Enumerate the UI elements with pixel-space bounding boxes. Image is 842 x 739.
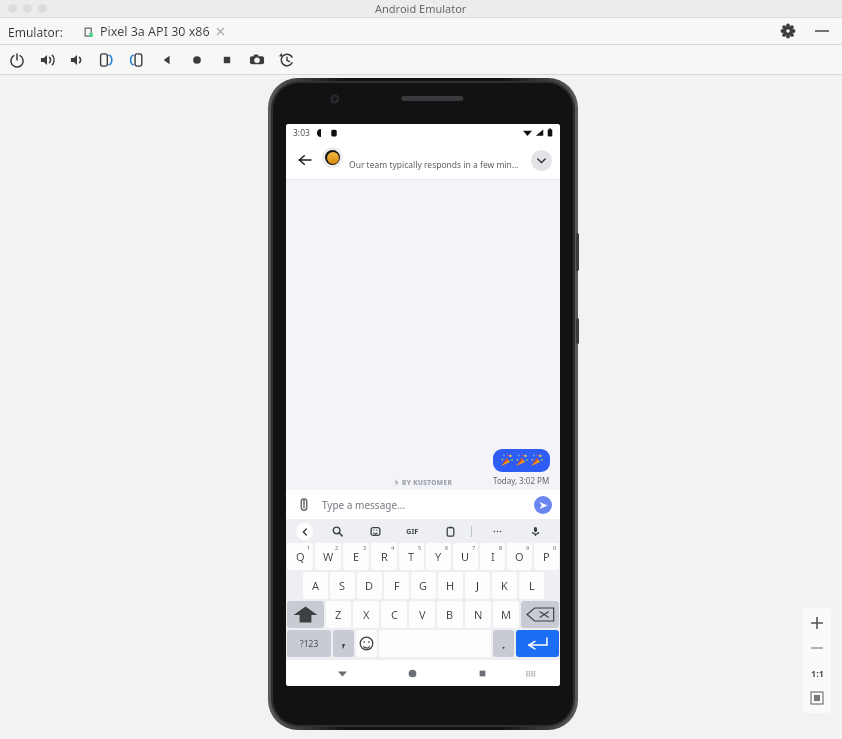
button[interactable]: Q — [287, 543, 313, 570]
staticText: P — [543, 549, 550, 564]
button[interactable]: Search — [328, 522, 346, 540]
button[interactable]: 1:1 — [807, 663, 827, 683]
staticText: F — [394, 578, 400, 593]
button[interactable]: Home — [402, 663, 422, 683]
staticText: Q — [296, 549, 305, 564]
staticText: K — [501, 578, 508, 593]
button[interactable]: Stickers — [366, 522, 384, 540]
staticText: Emulator: — [8, 24, 63, 40]
button[interactable]: D — [357, 572, 382, 599]
button[interactable]: Backspace — [521, 601, 559, 628]
staticText: R — [381, 549, 388, 564]
button[interactable]: M — [493, 601, 519, 628]
button[interactable]: Back — [156, 49, 178, 71]
button[interactable]: Home — [186, 49, 208, 71]
button[interactable]: More options — [488, 522, 506, 540]
staticText: W — [323, 549, 334, 564]
staticText: 4 — [391, 544, 395, 551]
staticText: X — [363, 607, 370, 622]
staticText: GIF — [406, 526, 419, 536]
button[interactable]: Y — [426, 543, 451, 570]
button[interactable]: Fit to window — [807, 688, 827, 708]
button[interactable]: Screenshot — [246, 49, 268, 71]
staticText: 1 — [307, 544, 311, 551]
staticText: H — [446, 578, 455, 593]
button[interactable]: G — [411, 572, 436, 599]
staticText: Type a message... — [322, 498, 406, 512]
staticText: D — [365, 578, 374, 593]
button[interactable]: Period — [493, 630, 514, 657]
staticText: A — [312, 578, 320, 593]
staticText: ?123 — [300, 638, 319, 650]
button[interactable]: X — [353, 601, 379, 628]
button[interactable]: Expand — [531, 150, 552, 171]
staticText: 8 — [499, 544, 503, 551]
button[interactable]: O — [507, 543, 532, 570]
button[interactable]: B — [437, 601, 463, 628]
button[interactable]: J — [465, 572, 490, 599]
button[interactable]: Rotate right — [126, 49, 148, 71]
button[interactable]: R — [371, 543, 397, 570]
button[interactable]: Back — [296, 523, 313, 540]
button[interactable]: C — [381, 601, 407, 628]
button[interactable]: Power — [6, 49, 28, 71]
button[interactable]: K — [492, 572, 517, 599]
button[interactable]: Attach file — [294, 495, 314, 515]
staticText: Today, 3:02 PM — [493, 475, 550, 486]
button[interactable]: Overview — [216, 49, 238, 71]
button[interactable]: F — [384, 572, 409, 599]
button[interactable] — [493, 449, 550, 472]
button[interactable]: S — [330, 572, 355, 599]
button[interactable]: Zoom out — [807, 638, 827, 658]
staticText: 3 — [363, 544, 367, 551]
button[interactable]: Comma — [333, 630, 354, 657]
button[interactable]: Switch keyboard — [520, 663, 540, 683]
button[interactable]: E — [343, 543, 369, 570]
button[interactable]: Emoji — [356, 630, 377, 657]
button[interactable]: Shift — [287, 601, 324, 628]
staticText: 6 — [445, 544, 449, 551]
button[interactable]: Pixel 3a API 30 x86 — [79, 23, 229, 40]
button[interactable]: L — [519, 572, 544, 599]
staticText: S — [339, 578, 346, 593]
button[interactable]: I — [480, 543, 505, 570]
staticText: Our team typically responds in a few min… — [349, 159, 519, 171]
button[interactable] — [322, 147, 343, 168]
staticText: 7 — [472, 544, 476, 551]
button[interactable]: Recent apps — [472, 663, 492, 683]
button[interactable]: Voice input — [526, 522, 544, 540]
button[interactable]: H — [438, 572, 463, 599]
button[interactable]: Volume down — [66, 49, 88, 71]
button[interactable]: Zoom in — [807, 613, 827, 633]
button[interactable]: Settings — [780, 23, 796, 39]
button[interactable]: U — [453, 543, 478, 570]
button[interactable]: Z — [326, 601, 351, 628]
button[interactable]: More — [276, 49, 298, 71]
button[interactable]: Back — [332, 663, 352, 683]
button[interactable]: V — [409, 601, 435, 628]
button[interactable]: T — [399, 543, 424, 570]
button[interactable]: Back — [292, 147, 318, 173]
staticText: B — [446, 607, 454, 622]
staticText: 3:03 — [293, 127, 310, 139]
button[interactable]: A — [303, 572, 328, 599]
staticText: N — [474, 607, 483, 622]
staticText: Z — [335, 607, 342, 622]
staticText: Y — [435, 549, 442, 564]
button[interactable]: Rotate left — [96, 49, 118, 71]
button[interactable]: Minimize — [814, 23, 830, 39]
button[interactable]: W — [315, 543, 341, 570]
button[interactable]: Clipboard — [441, 522, 459, 540]
staticText: J — [476, 578, 480, 593]
button[interactable]: Type a message... — [322, 498, 534, 512]
button[interactable]: Send — [534, 496, 552, 514]
button[interactable]: ?123 — [287, 630, 331, 657]
button[interactable]: Enter — [516, 630, 559, 657]
button[interactable]: Volume up — [36, 49, 58, 71]
button[interactable]: P — [534, 543, 559, 570]
button[interactable]: N — [465, 601, 491, 628]
button[interactable]: GIF — [404, 524, 421, 538]
other: Close tab — [216, 27, 225, 36]
staticText: Pixel 3a API 30 x86 — [100, 23, 210, 40]
